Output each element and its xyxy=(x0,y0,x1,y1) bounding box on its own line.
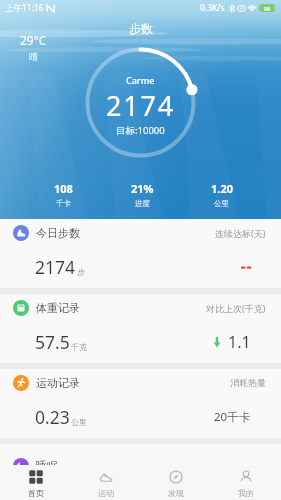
staticText: Carme xyxy=(126,74,155,86)
staticText: 体重记录 xyxy=(36,301,80,315)
staticText: 进度 xyxy=(135,199,150,208)
staticText: 晴 xyxy=(29,51,38,62)
button[interactable]: 首页 xyxy=(0,465,71,500)
staticText: 运动 xyxy=(98,488,114,498)
staticText: 千克 xyxy=(71,342,87,352)
staticText: 发现 xyxy=(168,488,184,498)
staticText: 0.23 xyxy=(35,405,70,429)
staticText: 睡眠 xyxy=(36,459,58,473)
button[interactable]: 我的 xyxy=(211,465,281,500)
staticText: 步 xyxy=(77,267,85,277)
staticText: 0.3K/s xyxy=(200,2,225,14)
button[interactable]: 今日步数 xyxy=(0,219,281,288)
staticText: 消耗热量 xyxy=(230,377,266,388)
button[interactable]: 发现 xyxy=(141,465,211,500)
staticText: 2174 xyxy=(106,87,175,124)
staticText: 20千卡 xyxy=(214,409,251,425)
staticText: 连续达标(天) xyxy=(215,227,266,239)
staticText: 公里 xyxy=(71,417,87,427)
staticText: 57.5 xyxy=(35,330,70,354)
staticText: 目标:10000 xyxy=(116,124,165,137)
staticText: 29°C xyxy=(20,32,47,48)
staticText: 首页 xyxy=(28,488,44,498)
button[interactable]: 睡眠 xyxy=(0,444,281,479)
button[interactable]: 体重记录 xyxy=(0,294,281,363)
staticText: 108 xyxy=(54,181,73,196)
staticText: 96 xyxy=(264,5,271,12)
staticText: 1.20 xyxy=(211,181,233,196)
staticText: 今日步数 xyxy=(36,226,80,240)
staticText: 步数 xyxy=(129,21,153,36)
staticText: 2174 xyxy=(35,255,76,279)
staticText: 1.1 xyxy=(228,331,251,353)
button[interactable]: 运动 xyxy=(71,465,141,500)
staticText: 运动记录 xyxy=(36,376,80,390)
staticText: 对比上次(千克) xyxy=(206,302,266,314)
button[interactable]: 运动记录 xyxy=(0,369,281,438)
staticText: 上午11:16 xyxy=(5,2,44,14)
staticText: 我的 xyxy=(238,488,254,498)
staticText: 公里 xyxy=(214,199,229,208)
staticText: 千卡 xyxy=(56,199,71,208)
staticText: 21% xyxy=(131,181,154,196)
